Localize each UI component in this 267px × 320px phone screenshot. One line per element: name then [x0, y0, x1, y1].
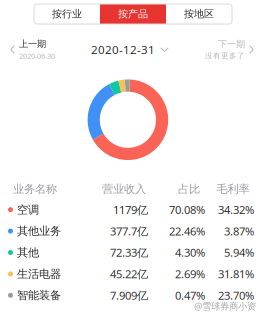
staticText: 34.32%	[218, 202, 254, 217]
staticText: 空调	[17, 203, 39, 217]
staticText: 营业收入	[102, 182, 146, 196]
button[interactable]: 2020-12-31	[91, 42, 169, 57]
button[interactable]: 上一期	[10, 38, 55, 61]
staticText: 7.909亿	[110, 288, 148, 303]
staticText: 4.30%	[175, 245, 205, 260]
staticText: 5.94%	[224, 245, 254, 260]
staticText: 其他	[17, 245, 39, 259]
staticText: 45.22亿	[110, 266, 148, 282]
staticText: 没有更多了	[205, 51, 245, 60]
staticText: 按产品	[118, 8, 148, 20]
staticText: 按行业	[52, 8, 82, 20]
staticText: 3.87%	[224, 223, 254, 239]
button[interactable]: 按地区	[166, 4, 232, 24]
staticText: 下一期	[218, 38, 245, 50]
staticText: 2020-12-31	[91, 42, 155, 57]
staticText: 按地区	[184, 8, 214, 20]
staticText: 377.7亿	[110, 223, 148, 239]
staticText: 占比	[178, 182, 200, 196]
button[interactable]: 按行业	[34, 4, 100, 24]
staticText: 生活电器	[17, 267, 61, 281]
staticText: 业务名称	[13, 182, 57, 196]
staticText: 毛利率	[216, 182, 249, 196]
staticText: 2.69%	[175, 266, 205, 282]
staticText: 72.33亿	[110, 245, 148, 260]
button[interactable]: 下一期	[205, 38, 254, 60]
staticText: 2020-06-30	[19, 51, 55, 61]
staticText: 70.08%	[169, 202, 205, 217]
staticText: 31.81%	[218, 266, 254, 282]
staticText: 其他业务	[17, 224, 61, 238]
staticText: 22.46%	[169, 223, 205, 239]
staticText: @雪球券商小资	[194, 300, 256, 312]
staticText: 0.47%	[175, 288, 205, 303]
staticText: 1179亿	[113, 202, 148, 217]
staticText: 23.70%	[218, 288, 254, 303]
staticText: 智能装备	[17, 288, 61, 302]
button[interactable]: 按产品	[100, 4, 166, 24]
staticText: 上一期	[19, 38, 46, 50]
